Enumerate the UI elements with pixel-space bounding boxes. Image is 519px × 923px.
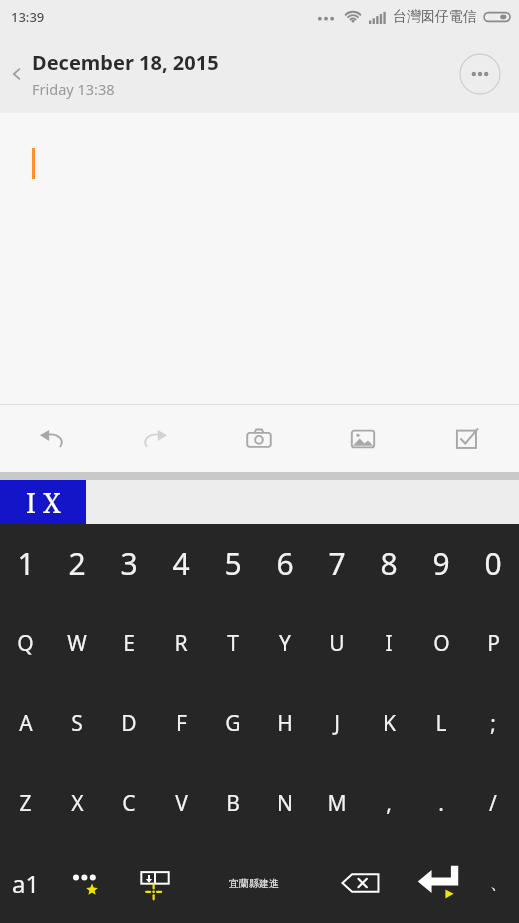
staticText: 9: [432, 543, 450, 584]
staticText: 、: [490, 873, 507, 894]
button[interactable]: I X: [0, 480, 86, 524]
button[interactable]: P: [467, 603, 519, 683]
staticText: B: [226, 789, 240, 818]
button[interactable]: H: [259, 683, 311, 763]
button[interactable]: F: [155, 683, 207, 763]
button[interactable]: Z: [0, 763, 51, 843]
staticText: G: [225, 709, 241, 738]
staticText: 3: [120, 543, 138, 584]
staticText: 13:39: [11, 8, 45, 26]
staticText: /: [489, 789, 497, 818]
button[interactable]: V: [155, 763, 207, 843]
button[interactable]: Emoji: [51, 843, 124, 923]
staticText: X: [71, 789, 84, 818]
staticText: 2: [68, 543, 86, 584]
staticText: H: [277, 709, 293, 738]
staticText: S: [71, 709, 83, 738]
button[interactable]: Grave: [477, 843, 519, 923]
staticText: A: [19, 709, 33, 738]
staticText: 5: [224, 543, 242, 584]
button[interactable]: Q: [0, 603, 51, 683]
button[interactable]: /: [467, 763, 519, 843]
staticText: I: [385, 629, 393, 658]
staticText: 8: [380, 543, 398, 584]
staticText: C: [122, 789, 136, 818]
button[interactable]: Camera: [207, 405, 311, 472]
staticText: N: [277, 789, 293, 818]
button[interactable]: O: [415, 603, 467, 683]
staticText: W: [67, 629, 87, 658]
button[interactable]: Insert image: [311, 405, 415, 472]
staticText: a1: [12, 867, 40, 900]
staticText: P: [487, 629, 500, 658]
button[interactable]: U: [311, 603, 363, 683]
button[interactable]: 7: [311, 524, 363, 603]
button[interactable]: 1: [0, 524, 51, 603]
button[interactable]: ,: [363, 763, 415, 843]
button[interactable]: T: [207, 603, 259, 683]
staticText: M: [327, 789, 347, 818]
button[interactable]: More options: [459, 53, 501, 95]
button[interactable]: N: [259, 763, 311, 843]
button[interactable]: S: [51, 683, 103, 763]
button[interactable]: X: [51, 763, 103, 843]
button[interactable]: Space: [186, 843, 321, 923]
button[interactable]: Redo: [103, 405, 207, 472]
staticText: 1: [17, 543, 35, 584]
button[interactable]: G: [207, 683, 259, 763]
staticText: 宜蘭縣建進: [229, 877, 279, 890]
button[interactable]: Keyboard layout: [124, 843, 186, 923]
staticText: Z: [19, 789, 32, 818]
staticText: 4: [172, 543, 190, 584]
button[interactable]: J: [311, 683, 363, 763]
staticText: ;: [490, 709, 496, 738]
button[interactable]: 0: [467, 524, 519, 603]
button[interactable]: 8: [363, 524, 415, 603]
button[interactable]: L: [415, 683, 467, 763]
staticText: F: [176, 709, 187, 738]
button[interactable]: Checklist: [415, 405, 519, 472]
staticText: V: [175, 789, 188, 818]
button[interactable]: M: [311, 763, 363, 843]
button[interactable]: R: [155, 603, 207, 683]
staticText: 6: [276, 543, 294, 584]
staticText: L: [435, 709, 447, 738]
staticText: U: [329, 629, 345, 658]
button[interactable]: 9: [415, 524, 467, 603]
staticText: D: [121, 709, 137, 738]
button[interactable]: Undo: [0, 405, 103, 472]
button[interactable]: 5: [207, 524, 259, 603]
staticText: 0: [484, 543, 502, 584]
button[interactable]: Symbols: [0, 843, 51, 923]
staticText: O: [433, 629, 450, 658]
button[interactable]: I: [363, 603, 415, 683]
button[interactable]: ;: [467, 683, 519, 763]
button[interactable]: 3: [103, 524, 155, 603]
button[interactable]: B: [207, 763, 259, 843]
staticText: 7: [328, 543, 346, 584]
button[interactable]: Y: [259, 603, 311, 683]
staticText: K: [383, 709, 396, 738]
staticText: December 18, 2015: [32, 49, 219, 76]
staticText: Q: [17, 629, 34, 658]
button[interactable]: Back: [0, 49, 34, 99]
button[interactable]: 4: [155, 524, 207, 603]
staticText: R: [174, 629, 188, 658]
button[interactable]: A: [0, 683, 51, 763]
button[interactable]: 2: [51, 524, 103, 603]
staticText: Friday 13:38: [32, 79, 115, 99]
button[interactable]: W: [51, 603, 103, 683]
staticText: I X: [26, 484, 61, 521]
button[interactable]: E: [103, 603, 155, 683]
button[interactable]: K: [363, 683, 415, 763]
button[interactable]: Enter: [399, 843, 477, 923]
staticText: 台灣囡仔電信: [393, 8, 477, 26]
button[interactable]: .: [415, 763, 467, 843]
button[interactable]: Backspace: [321, 843, 399, 923]
staticText: T: [227, 629, 239, 658]
button[interactable]: 6: [259, 524, 311, 603]
button[interactable]: D: [103, 683, 155, 763]
staticText: J: [334, 709, 340, 738]
staticText: Y: [279, 629, 291, 658]
button[interactable]: C: [103, 763, 155, 843]
